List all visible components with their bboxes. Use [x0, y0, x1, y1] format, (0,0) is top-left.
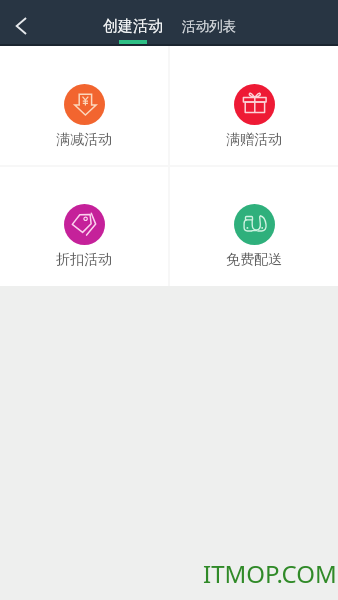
button[interactable]: 折扣活动 [0, 167, 168, 286]
button[interactable]: 创建活动 [97, 0, 169, 46]
button[interactable]: 满减活动 [0, 46, 168, 165]
button[interactable]: 免费配送 [170, 167, 338, 286]
staticText: 满减活动 [56, 131, 112, 149]
button[interactable]: 活动列表 [175, 0, 243, 46]
staticText: 免费配送 [226, 251, 282, 269]
staticText: 活动列表 [182, 18, 236, 35]
button[interactable]: Back [0, 4, 42, 46]
staticText: 满赠活动 [226, 131, 282, 149]
button[interactable]: 满赠活动 [170, 46, 338, 165]
staticText: 创建活动 [103, 17, 163, 36]
staticText: ITMOP.COM [203, 557, 337, 590]
staticText: 折扣活动 [56, 251, 112, 269]
